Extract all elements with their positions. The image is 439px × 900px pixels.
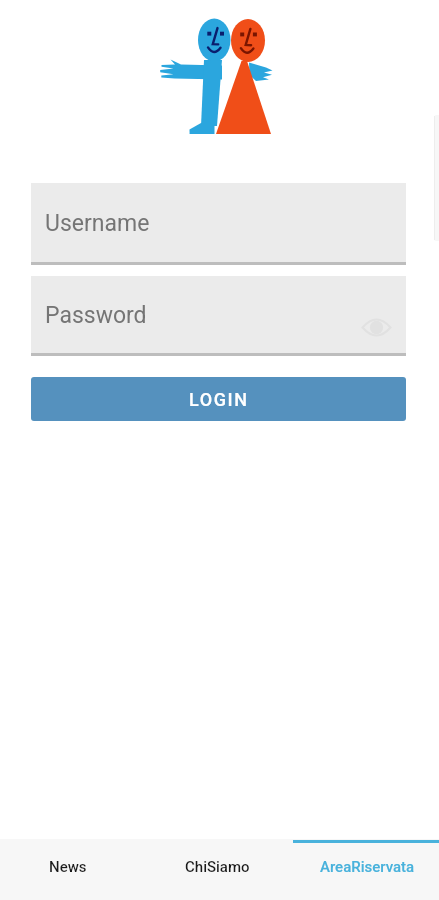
button[interactable]: ChiSiamo: [144, 839, 290, 900]
staticText: ChiSiamo: [185, 858, 250, 876]
button[interactable]: Username: [31, 183, 406, 265]
button[interactable]: Show password: [356, 307, 396, 347]
staticText: Username: [45, 210, 150, 237]
button[interactable]: AreaRiservata: [294, 839, 439, 900]
staticText: AreaRiservata: [320, 858, 415, 876]
staticText: LOGIN: [189, 389, 249, 410]
staticText: News: [49, 858, 87, 876]
staticText: Password: [45, 302, 147, 329]
button[interactable]: Password: [31, 276, 406, 356]
button[interactable]: LOGIN: [31, 377, 406, 421]
button[interactable]: News: [0, 839, 141, 900]
